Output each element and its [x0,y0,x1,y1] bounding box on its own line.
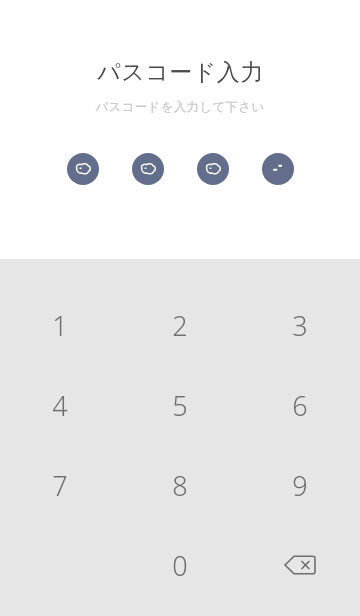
staticText: 3 [292,307,308,344]
button[interactable] [67,153,99,185]
button[interactable]: 1 [0,285,120,365]
staticText: 8 [172,467,188,504]
staticText: パスコードを入力して下さい [95,99,265,115]
button[interactable]: 8 [120,445,240,525]
staticText: 9 [292,467,308,504]
staticText: 1 [52,307,68,344]
button[interactable]: Backspace [240,525,360,605]
button[interactable] [197,153,229,185]
staticText: 6 [292,387,308,424]
button[interactable]: 3 [240,285,360,365]
staticText: 5 [172,387,188,424]
button[interactable]: 4 [0,365,120,445]
button[interactable] [262,153,294,185]
staticText: 7 [52,467,68,504]
button[interactable]: 2 [120,285,240,365]
button[interactable]: 9 [240,445,360,525]
button[interactable]: 7 [0,445,120,525]
staticText: 4 [52,387,68,424]
button[interactable]: 0 [120,525,240,605]
button[interactable]: 5 [120,365,240,445]
staticText: パスコード入力 [97,58,264,87]
staticText: 2 [172,307,188,344]
button[interactable] [132,153,164,185]
button[interactable]: 6 [240,365,360,445]
staticText: 0 [172,547,188,584]
